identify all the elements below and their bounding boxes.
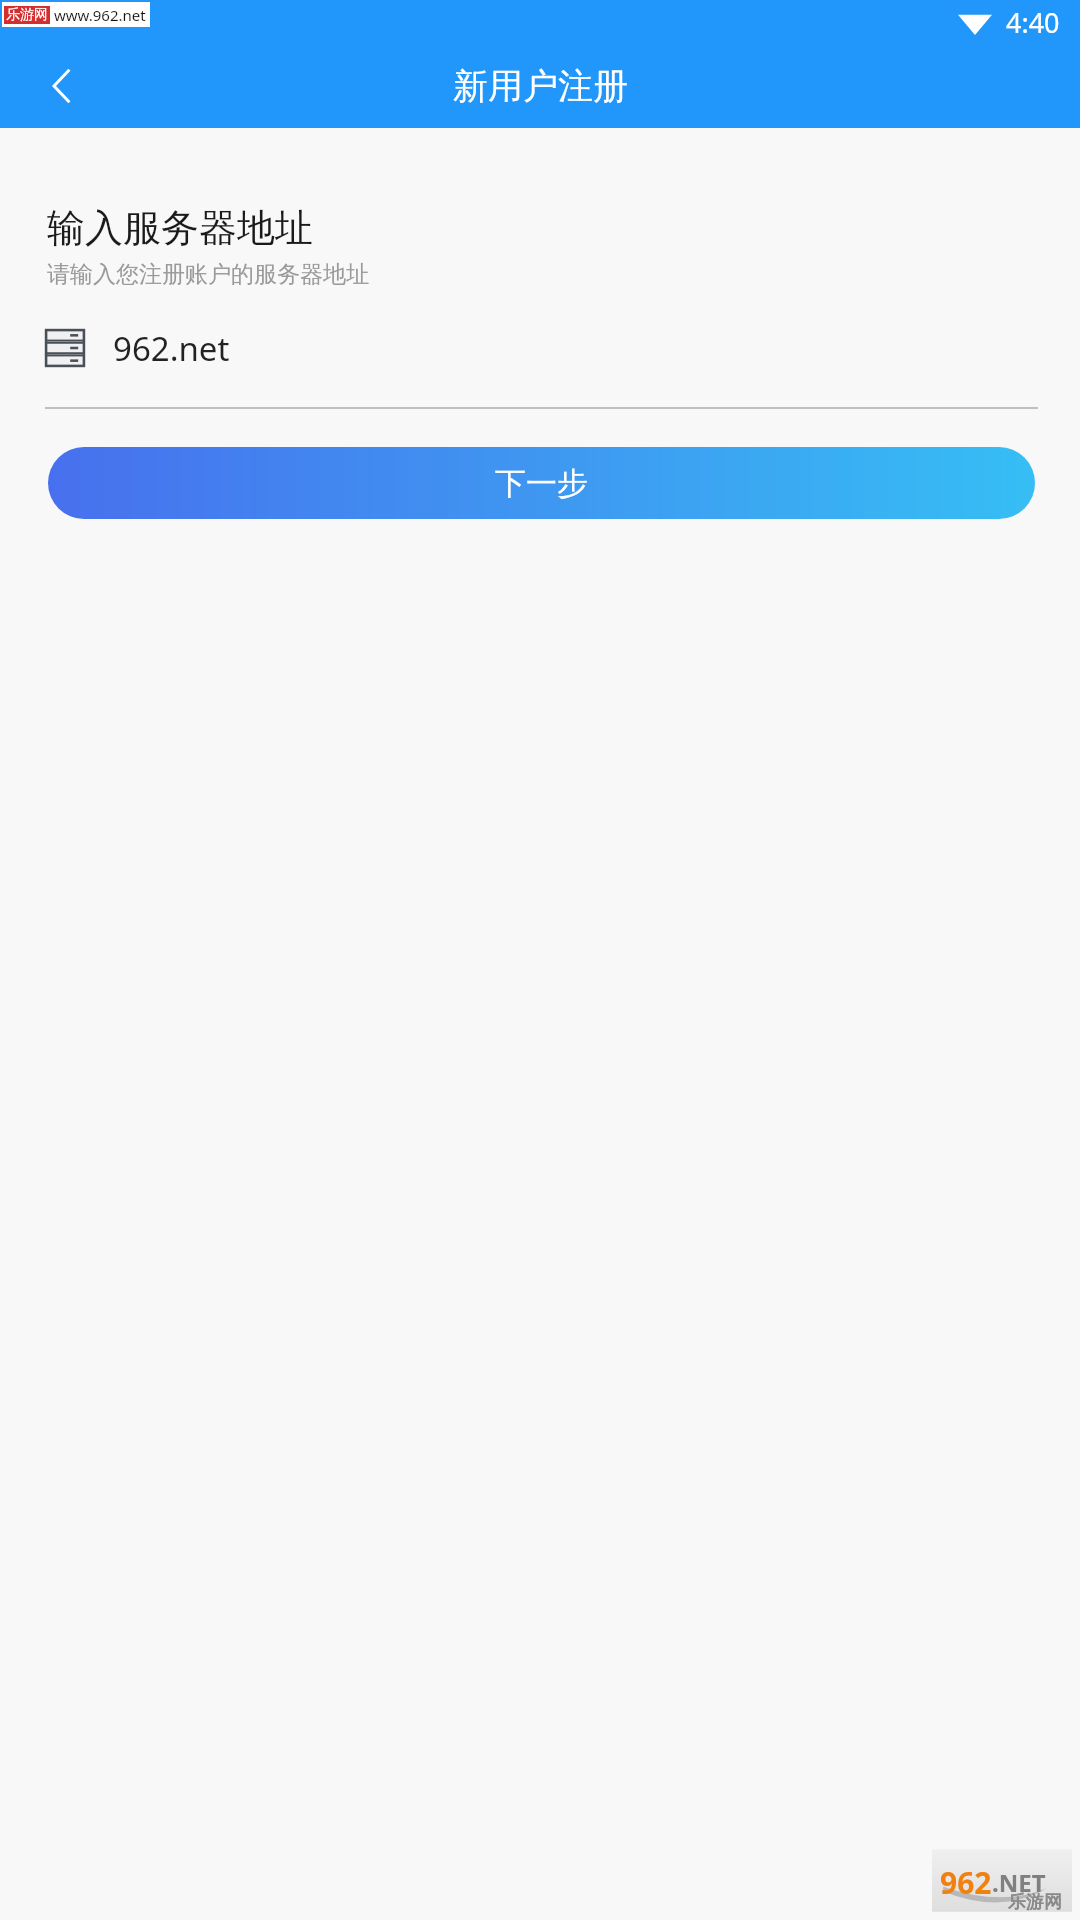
staticText: www.962.net: [54, 5, 146, 25]
button[interactable]: Back: [20, 44, 104, 128]
staticText: 输入服务器地址: [47, 204, 313, 252]
staticText: 新用户注册: [453, 64, 628, 108]
staticText: 请输入您注册账户的服务器地址: [47, 260, 369, 289]
staticText: 下一步: [495, 464, 588, 503]
button[interactable]: 962.net: [45, 317, 1038, 379]
staticText: 4:40: [1006, 4, 1060, 41]
button[interactable]: 下一步: [48, 447, 1035, 519]
staticText: 乐游网: [1008, 1891, 1062, 1914]
staticText: 962.net: [113, 326, 230, 371]
staticText: 乐游网: [6, 6, 48, 24]
staticText: 962: [940, 1862, 992, 1903]
staticText: .NET: [992, 1866, 1046, 1899]
